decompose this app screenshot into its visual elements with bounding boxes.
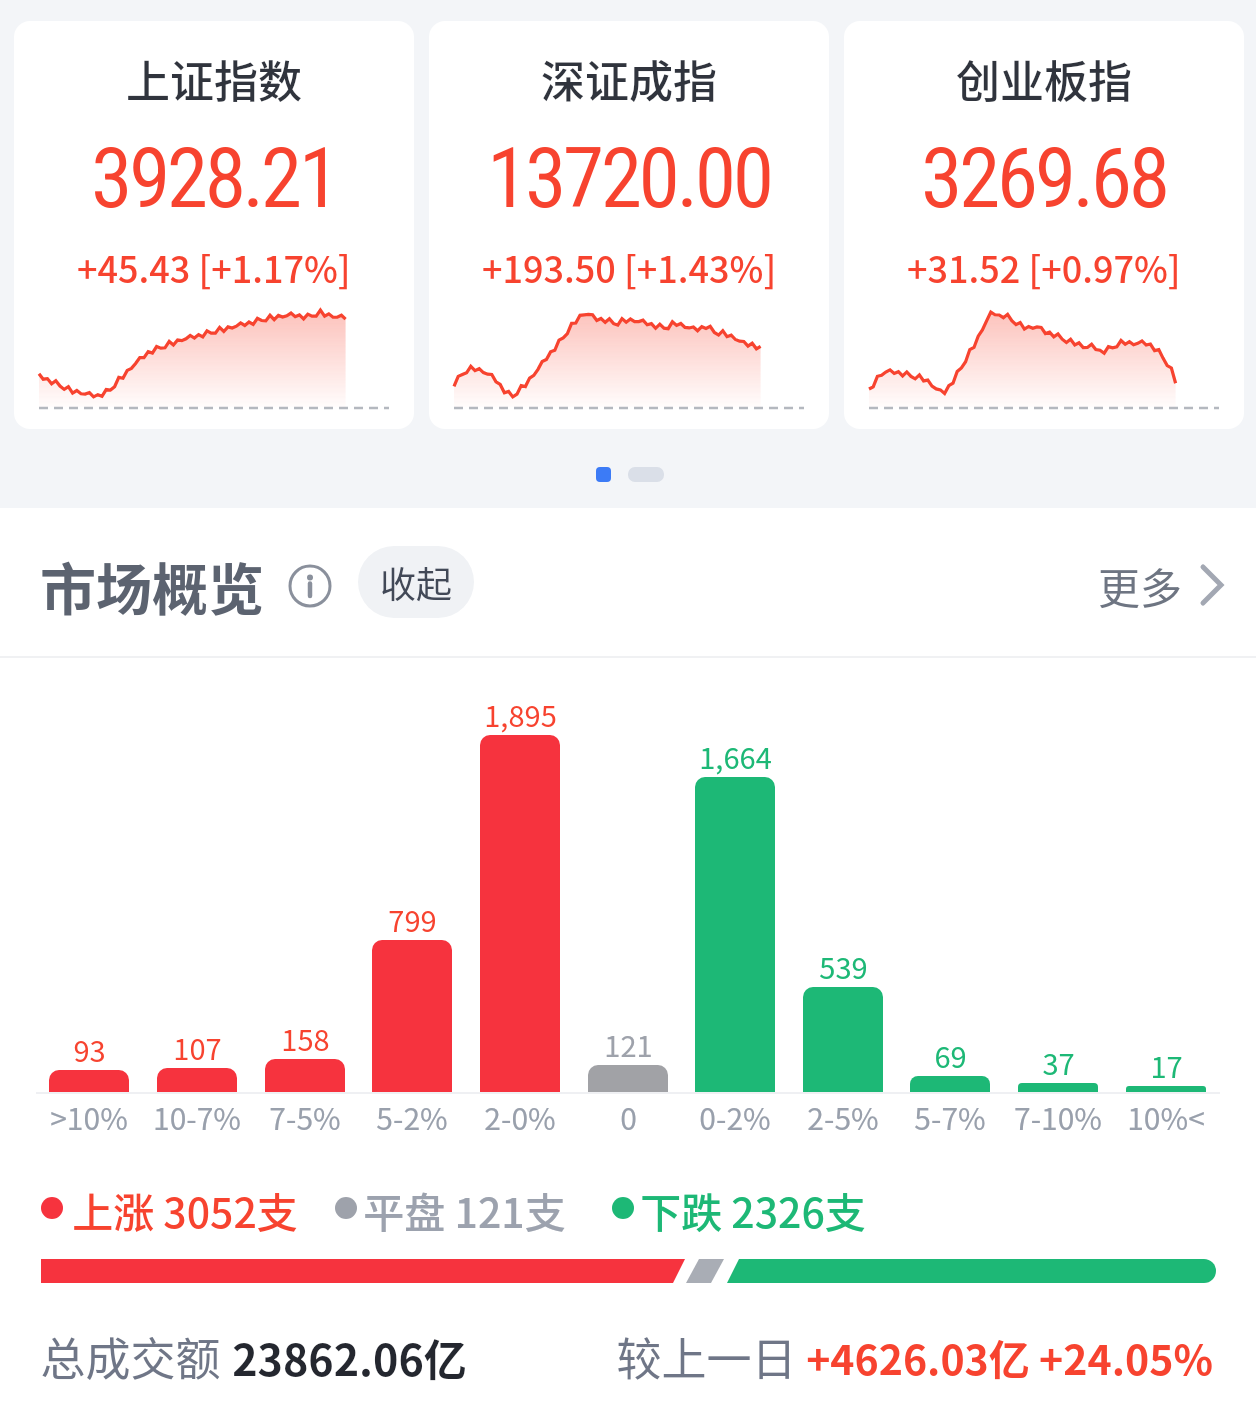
- staticText: 更多: [1098, 555, 1183, 616]
- button[interactable]: 深证成指: [429, 21, 829, 429]
- button[interactable]: 上证指数: [14, 21, 414, 429]
- button[interactable]: 创业板指: [844, 21, 1244, 429]
- staticText: 上证指数: [126, 47, 302, 111]
- staticText: 10-7%: [153, 1095, 241, 1138]
- staticText: 17: [1150, 1044, 1183, 1086]
- staticText: 7-5%: [269, 1095, 341, 1138]
- staticText: 121: [604, 1023, 653, 1065]
- staticText: 3928.21: [91, 129, 337, 227]
- staticText: 93: [73, 1028, 106, 1070]
- staticText: 0: [620, 1095, 637, 1138]
- button[interactable]: [596, 467, 611, 482]
- staticText: 69: [934, 1034, 967, 1076]
- staticText: 2-5%: [807, 1095, 879, 1138]
- staticText: 下跌 2326支: [640, 1180, 866, 1239]
- staticText: +193.50 [+1.43%]: [482, 241, 777, 293]
- staticText: 539: [819, 945, 868, 987]
- button[interactable]: 收起: [358, 546, 474, 618]
- staticText: +31.52 [+0.97%]: [907, 241, 1181, 293]
- staticText: 5-7%: [914, 1095, 986, 1138]
- staticText: 7-10%: [1014, 1095, 1102, 1138]
- staticText: 1,664: [699, 735, 772, 777]
- staticText: 0-2%: [699, 1095, 771, 1138]
- staticText: >10%: [50, 1095, 128, 1138]
- staticText: 平盘 121支: [363, 1180, 566, 1239]
- staticText: 收起: [380, 556, 453, 608]
- staticText: 较上一日: [616, 1324, 797, 1389]
- staticText: 2-0%: [484, 1095, 556, 1138]
- staticText: 创业板指: [956, 47, 1132, 111]
- staticText: 3269.68: [921, 129, 1167, 227]
- staticText: 107: [173, 1026, 222, 1068]
- staticText: +45.43 [+1.17%]: [77, 241, 351, 293]
- staticText: 23862.06亿: [232, 1326, 467, 1388]
- staticText: 13720.00: [487, 129, 771, 227]
- staticText: 158: [281, 1017, 330, 1059]
- staticText: 上涨 3052支: [72, 1180, 298, 1239]
- staticText: 799: [388, 898, 437, 940]
- button[interactable]: 更多: [1090, 552, 1236, 618]
- staticText: 37: [1042, 1041, 1075, 1083]
- staticText: 5-2%: [376, 1095, 448, 1138]
- staticText: 总成交额: [40, 1324, 221, 1389]
- staticText: 10%<: [1127, 1095, 1205, 1138]
- staticText: 市场概览: [40, 545, 264, 626]
- button[interactable]: [288, 564, 332, 608]
- staticText: 1,895: [484, 693, 557, 735]
- staticText: +4626.03亿 +24.05%: [806, 1327, 1213, 1386]
- staticText: 深证成指: [541, 47, 717, 111]
- button[interactable]: [628, 467, 664, 482]
